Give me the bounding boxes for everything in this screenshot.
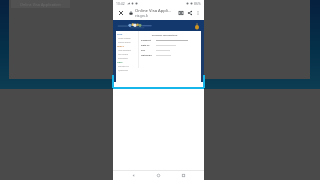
staticText: Online Visa Application: [20, 2, 61, 7]
staticText: Online Visa Appli...: [135, 8, 172, 14]
button[interactable]: APPLY: [117, 44, 138, 48]
staticText: Questions: [118, 69, 128, 72]
button[interactable]: New Request: [117, 48, 138, 52]
staticText: 10:42: [116, 1, 125, 6]
staticText: Date of Birth: [141, 44, 152, 47]
staticText: HELP: [117, 61, 123, 64]
button[interactable]: Date of Birth: [141, 43, 188, 48]
button[interactable]: Download: [176, 8, 185, 17]
button[interactable]: Full Name: [141, 48, 188, 53]
staticText: APPLY: [117, 45, 125, 48]
staticText: Personal Information: [141, 33, 188, 36]
button[interactable]: Online Visa Application: [11, 0, 70, 8]
button[interactable]: Close: [116, 8, 125, 17]
staticText: VISA: [117, 33, 123, 36]
staticText: New Request: [118, 49, 131, 52]
staticText: Contact Us: [118, 65, 129, 68]
staticText: 86%: [194, 1, 201, 6]
button[interactable]: Nationality: [141, 53, 188, 58]
button[interactable]: Apply Online: [117, 36, 138, 40]
staticText: Nationality: [141, 54, 152, 57]
staticText: Payments: [118, 57, 128, 60]
button[interactable]: My Profile: [117, 52, 138, 56]
staticText: Passport No: [141, 39, 152, 42]
button[interactable]: Passport No: [141, 38, 188, 43]
button[interactable]: Payments: [117, 56, 138, 60]
button[interactable]: Home: [154, 171, 163, 180]
button[interactable]: Questions: [117, 68, 138, 72]
button[interactable]: HELP: [117, 60, 138, 64]
button[interactable]: Share: [185, 8, 194, 17]
button[interactable]: Back: [129, 171, 138, 180]
button[interactable]: VISA: [117, 32, 138, 36]
staticText: My Profile: [118, 53, 128, 56]
staticText: eta.gov.lk: [135, 14, 148, 18]
staticText: Check Status: [118, 41, 131, 44]
staticText: Apply Online: [118, 37, 131, 40]
button[interactable]: More options: [194, 9, 202, 17]
button[interactable]: Check Status: [117, 40, 138, 44]
staticText: Full Name: [141, 49, 152, 52]
button[interactable]: Contact Us: [117, 64, 138, 68]
button[interactable]: Recents: [179, 171, 188, 180]
